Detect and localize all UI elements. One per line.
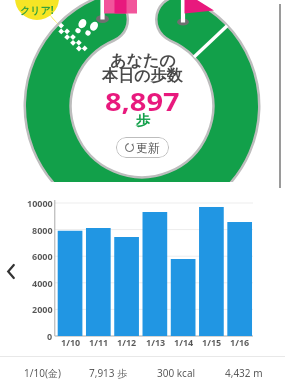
staticText: 4,432 m — [225, 366, 263, 380]
staticText: 1/12 — [117, 336, 137, 348]
staticText: 更新 — [136, 140, 160, 155]
button[interactable]: 更新 — [116, 137, 169, 158]
staticText: 0 — [47, 330, 53, 342]
staticText: 1/15 — [202, 336, 222, 348]
staticText: 1/13 — [146, 336, 166, 348]
staticText: 8000 — [32, 224, 53, 236]
staticText: 6000 — [32, 250, 53, 262]
button[interactable]: Previous week — [1, 258, 21, 284]
staticText: 1/10(金) — [24, 366, 61, 380]
staticText: 本日の歩数 — [102, 66, 183, 86]
staticText: 1/14 — [174, 336, 194, 348]
staticText: 1/11 — [89, 336, 109, 348]
staticText: 4000 — [32, 277, 53, 289]
staticText: 10000 — [27, 197, 53, 209]
staticText: 300 kcal — [157, 366, 196, 380]
staticText: クリア! — [20, 3, 54, 17]
staticText: あなたの — [110, 51, 176, 71]
staticText: 7,913 歩 — [89, 366, 128, 380]
staticText: 8,897 — [105, 85, 180, 118]
staticText: 2000 — [32, 303, 53, 315]
staticText: 1/16 — [230, 336, 250, 348]
staticText: 歩 — [136, 112, 150, 130]
staticText: 1/10 — [61, 336, 81, 348]
